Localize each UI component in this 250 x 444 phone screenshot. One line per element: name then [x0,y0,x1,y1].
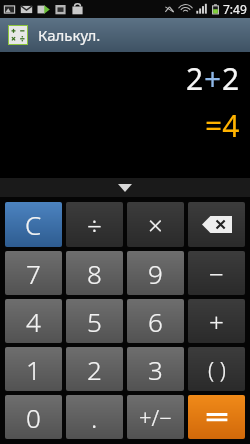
button[interactable]: + [188,299,245,343]
button[interactable]: 1 [5,347,62,391]
staticText: 9 [148,256,163,291]
staticText: ÷ [87,207,102,242]
staticText: 4 [26,304,41,339]
button[interactable]: ÷ [66,202,123,247]
staticText: +/− [139,402,172,432]
staticText: × [148,207,163,242]
staticText: 0 [26,400,41,435]
button[interactable]: 6 [127,299,184,343]
staticText: 7 [26,256,41,291]
button[interactable]: Backspace [188,202,245,247]
button[interactable]: 5 [66,299,123,343]
staticText: + [209,304,224,339]
staticText: ( ) [208,354,226,384]
button[interactable]: − [188,251,245,295]
staticText: Калькул. [38,25,101,45]
button[interactable]: 4 [5,299,62,343]
button[interactable]: C [5,202,62,247]
staticText: + [204,58,222,99]
staticText: 8 [87,256,102,291]
button[interactable]: ( ) [188,347,245,391]
staticText: =4 [205,105,240,146]
button[interactable]: 8 [66,251,123,295]
button[interactable]: 7 [5,251,62,295]
staticText: 7:49 [223,1,247,17]
staticText: 1 [26,352,41,387]
staticText: − [209,256,224,291]
staticText: C [25,207,42,242]
staticText: 3 [148,352,163,387]
button[interactable] [188,395,245,439]
button[interactable]: 9 [127,251,184,295]
staticText: 6 [148,304,163,339]
button[interactable]: 0 [5,395,62,439]
button[interactable]: 2 [66,347,123,391]
staticText: 2 [87,352,102,387]
button[interactable]: +/− [127,395,184,439]
staticText: . [91,400,98,435]
button[interactable]: Collapse panel [0,178,250,197]
button[interactable]: × [127,202,184,247]
staticText: 5 [87,304,102,339]
button[interactable]: 3 [127,347,184,391]
staticText: 2 [186,58,204,99]
staticText: 2 [222,58,240,99]
button[interactable]: . [66,395,123,439]
